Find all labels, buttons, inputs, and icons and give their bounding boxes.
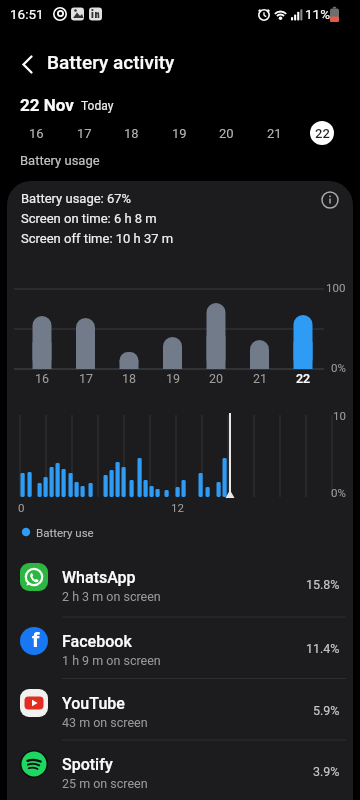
staticText: 19: [166, 371, 181, 386]
button[interactable]: Spotify: [7, 744, 353, 800]
staticText: 43 m on screen: [62, 715, 148, 730]
staticText: Battery use: [36, 526, 94, 539]
staticText: 100: [326, 281, 346, 294]
staticText: Screen off time: 10 h 37 m: [21, 231, 174, 246]
staticText: Spotify: [62, 755, 113, 774]
staticText: 25 m on screen: [62, 776, 148, 791]
staticText: 17: [77, 126, 92, 141]
button[interactable]: 19: [165, 121, 193, 145]
staticText: 12: [171, 501, 184, 514]
button[interactable]: WhatsApp: [7, 557, 353, 615]
staticText: Battery activity: [47, 51, 175, 73]
staticText: 18: [122, 371, 137, 386]
staticText: 1 h 9 m on screen: [62, 653, 161, 668]
staticText: 0%: [331, 361, 346, 374]
staticText: 20: [219, 126, 234, 141]
staticText: 19: [172, 126, 187, 141]
staticText: 11.4%: [306, 641, 340, 656]
button[interactable]: [6, 44, 46, 84]
staticText: YouTube: [62, 694, 125, 713]
staticText: Battery usage: 67%: [21, 191, 132, 206]
staticText: WhatsApp: [62, 568, 136, 587]
staticText: 10: [333, 409, 346, 422]
staticText: 5.9%: [313, 703, 340, 718]
staticText: f: [32, 628, 40, 653]
staticText: Battery usage: [20, 153, 100, 168]
staticText: 21: [267, 126, 282, 141]
button[interactable]: 22: [310, 121, 334, 145]
button[interactable]: 18: [117, 121, 145, 145]
staticText: 3.9%: [313, 764, 340, 779]
staticText: Today: [81, 99, 114, 113]
staticText: 0: [18, 501, 25, 514]
button[interactable]: YouTube: [7, 683, 353, 741]
staticText: 0%: [331, 486, 346, 499]
button[interactable]: 21: [260, 121, 288, 145]
staticText: 22: [296, 371, 311, 386]
button[interactable]: 17: [70, 121, 98, 145]
staticText: 18: [124, 126, 139, 141]
button[interactable]: [318, 188, 342, 212]
button[interactable]: 20: [212, 121, 240, 145]
staticText: 11%: [305, 6, 331, 22]
staticText: 16: [35, 371, 50, 386]
staticText: 22 Nov: [20, 95, 74, 115]
staticText: 15.8%: [306, 577, 340, 592]
staticText: 16:51: [10, 6, 44, 22]
staticText: 21: [253, 371, 268, 386]
staticText: Facebook: [62, 632, 132, 651]
staticText: 20: [209, 371, 224, 386]
staticText: 2 h 3 m on screen: [62, 589, 161, 604]
staticText: 17: [79, 371, 94, 386]
button[interactable]: 16: [22, 121, 50, 145]
button[interactable]: f: [7, 621, 353, 679]
staticText: 16: [29, 126, 44, 141]
staticText: 22: [315, 126, 330, 141]
staticText: Screen on time: 6 h 8 m: [21, 211, 157, 226]
